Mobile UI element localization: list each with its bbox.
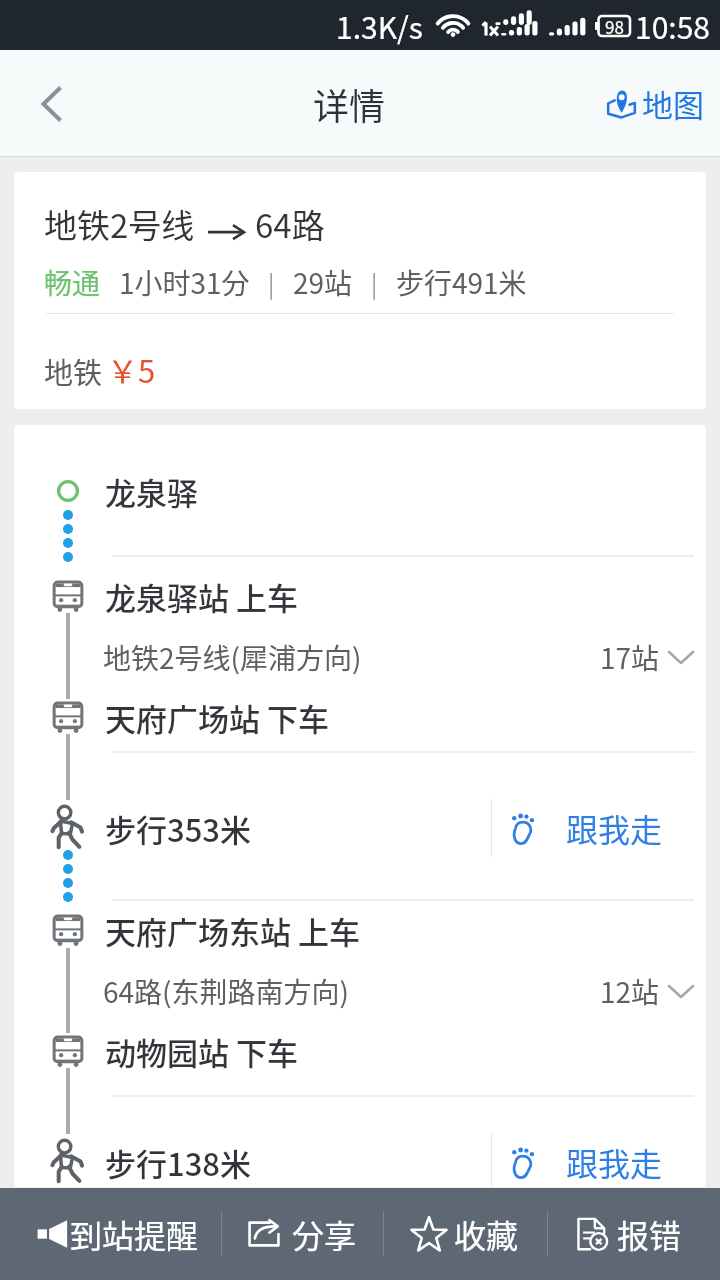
staticText: 步行138米	[105, 1140, 252, 1185]
button[interactable]: 地铁2号线	[14, 172, 706, 409]
staticText: 畅通	[44, 262, 101, 303]
staticText: 天府广场东站 上车	[105, 908, 360, 953]
button[interactable]: Back	[0, 50, 104, 157]
staticText: |	[268, 265, 275, 300]
staticText: 1小时31分	[119, 262, 250, 303]
button[interactable]: 到站提醒	[8, 1188, 211, 1280]
button[interactable]: 报错	[564, 1188, 694, 1280]
staticText: 17站	[600, 637, 660, 678]
staticText: 12站	[600, 971, 660, 1012]
staticText: 报错	[617, 1211, 682, 1257]
staticText: 地铁	[44, 350, 103, 392]
staticText: 98	[605, 14, 624, 39]
staticText: 10:58	[635, 4, 710, 47]
staticText: 到站提醒	[70, 1211, 199, 1257]
staticText: 地铁2号线(犀浦方向)	[103, 637, 362, 678]
button[interactable]: 分享	[238, 1188, 369, 1280]
staticText: 天府广场站 下车	[105, 695, 329, 740]
staticText: 跟我走	[566, 1139, 663, 1185]
staticText: 1.3K/s	[336, 4, 423, 47]
staticText: 详情	[313, 78, 386, 130]
staticText: 动物园站 下车	[105, 1029, 298, 1074]
staticText: 64路	[255, 200, 325, 248]
staticText: ￥5	[107, 347, 156, 392]
button[interactable]: 跟我走	[509, 799, 663, 857]
button[interactable]: 收藏	[400, 1188, 531, 1280]
staticText: 步行491米	[396, 262, 527, 303]
button[interactable]: 跟我走	[509, 1133, 663, 1187]
staticText: 分享	[292, 1211, 357, 1257]
staticText: 龙泉驿	[105, 469, 198, 514]
staticText: 龙泉驿站 上车	[105, 574, 298, 619]
staticText: 64路(东荆路南方向)	[103, 971, 350, 1012]
staticText: 地铁2号线	[44, 200, 195, 248]
staticText: |	[371, 265, 378, 300]
staticText: 收藏	[454, 1211, 519, 1257]
staticText: 步行353米	[105, 806, 252, 851]
button[interactable]: 地铁2号线(犀浦方向)	[14, 630, 706, 684]
button[interactable]: 地图	[606, 81, 704, 126]
button[interactable]: 64路(东荆路南方向)	[14, 964, 706, 1018]
staticText: 29站	[293, 262, 353, 303]
staticText: 地图	[642, 81, 704, 126]
staticText: 跟我走	[566, 805, 663, 851]
